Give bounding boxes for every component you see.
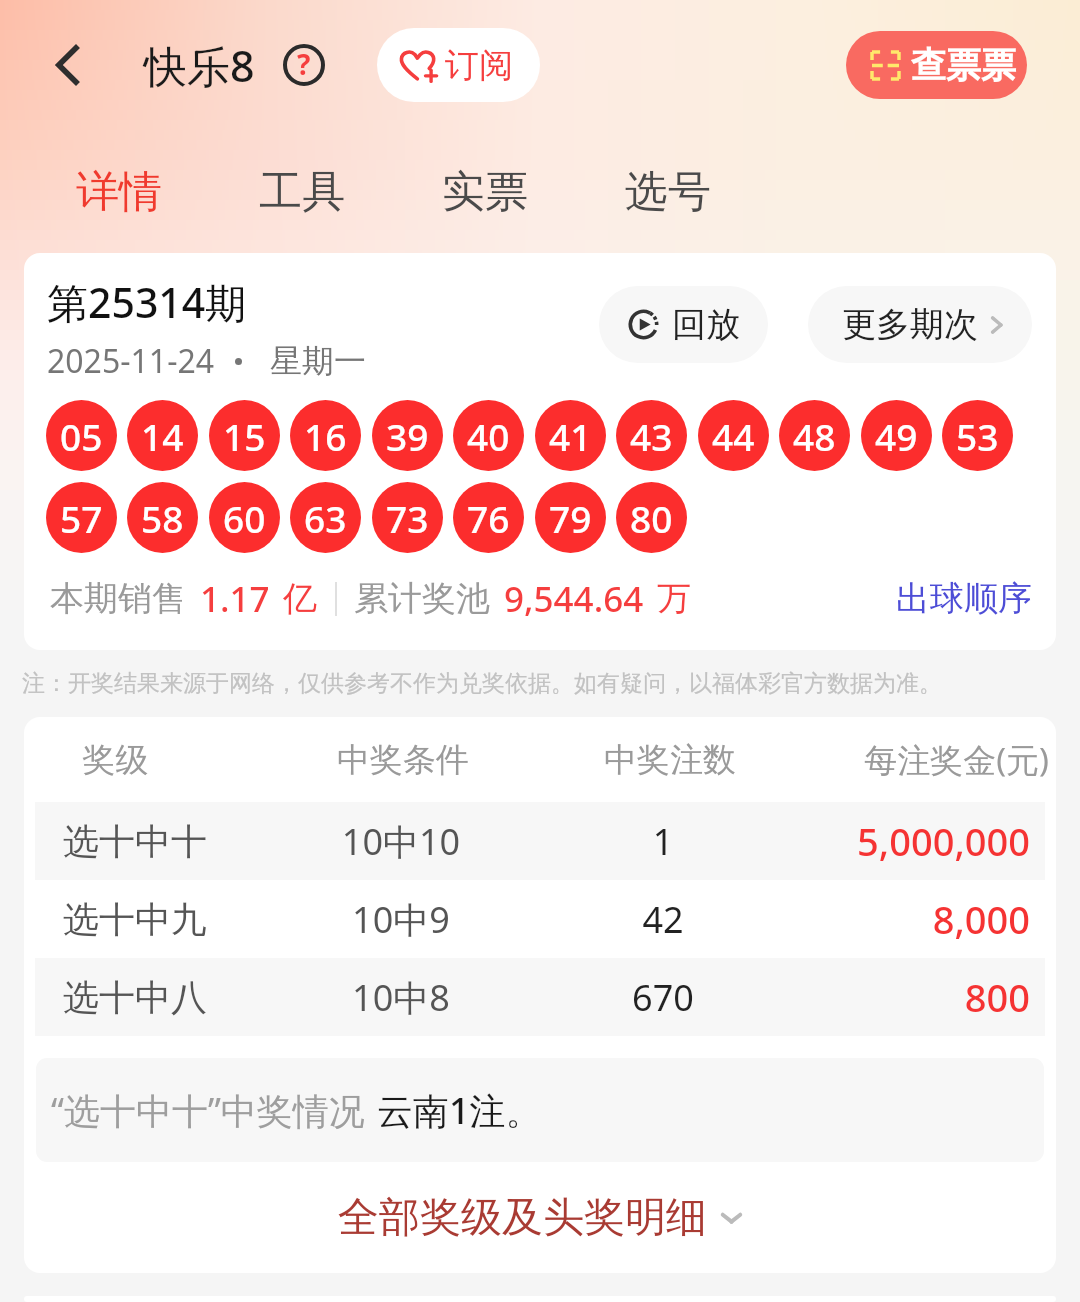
staticText: 05 [60, 411, 103, 461]
staticText: 5,000,000 [759, 815, 1030, 867]
staticText: 注：开奖结果来源于网络，仅供参考不作为兑奖依据。如有疑问，以福体彩官方数据为准。 [22, 669, 1080, 698]
staticText: 15 [223, 411, 266, 461]
button[interactable]: 选十中九 [35, 880, 1045, 958]
staticText: 80 [630, 493, 673, 543]
staticText: 63 [304, 493, 347, 543]
button[interactable]: Back [44, 35, 104, 95]
staticText: 800 [759, 971, 1030, 1023]
staticText: 42 [567, 895, 759, 944]
staticText: 快乐8 [144, 36, 255, 95]
button[interactable]: 全部奖级及头奖明细 [24, 1162, 1056, 1273]
button[interactable]: 更多期次 [808, 286, 1032, 363]
staticText: 48 [793, 411, 836, 461]
button[interactable]: 详情 [76, 130, 259, 253]
staticText: 1 [567, 817, 759, 866]
button[interactable]: Help [283, 44, 325, 86]
staticText: 出球顺序 [896, 577, 1032, 620]
staticText: 奖级 [24, 739, 207, 781]
staticText: 星期一 [270, 341, 366, 381]
button[interactable]: 选十中八 [35, 958, 1045, 1036]
staticText: 更多期次 [842, 303, 978, 346]
staticText: 58 [141, 493, 184, 543]
staticText: 10中8 [235, 973, 567, 1022]
staticText: 40 [467, 411, 510, 461]
staticText: 累计奖池 [354, 577, 490, 620]
staticText: 60 [223, 493, 266, 543]
staticText: 79 [549, 493, 592, 543]
staticText: 全部奖级及头奖明细 [338, 1192, 707, 1244]
staticText: 10中10 [235, 817, 567, 866]
staticText: 8,000 [759, 893, 1030, 945]
button[interactable]: 选十中十 [35, 802, 1045, 880]
staticText: 53 [956, 411, 999, 461]
staticText: 2025-11-24 [47, 339, 215, 383]
staticText: 76 [467, 493, 510, 543]
staticText: 本期销售 [50, 577, 186, 620]
staticText: 万 [657, 577, 691, 620]
staticText: 亿 [283, 577, 317, 620]
staticText: 670 [567, 973, 759, 1022]
staticText: 49 [875, 411, 918, 461]
staticText: 第25314期 [47, 274, 247, 330]
staticText: 选号 [625, 165, 711, 219]
button[interactable]: 回放 [599, 286, 768, 363]
staticText: 9,544.64 [504, 575, 644, 623]
staticText: 73 [386, 493, 429, 543]
staticText: 39 [386, 411, 429, 461]
staticText: 57 [60, 493, 103, 543]
staticText: 1.17 [200, 575, 270, 623]
staticText: “选十中十”中奖情况 [51, 1086, 365, 1135]
staticText: 工具 [259, 165, 345, 219]
staticText: 每注奖金(元) [741, 737, 1049, 782]
staticText: 14 [141, 411, 184, 461]
staticText: 选十中十 [35, 819, 235, 864]
button[interactable]: 实票 [442, 130, 625, 253]
button[interactable]: 订阅 [377, 28, 540, 102]
staticText: 实票 [442, 165, 528, 219]
staticText: 云南1注。 [377, 1086, 542, 1135]
staticText: 选十中八 [35, 975, 235, 1020]
staticText: 中奖条件 [207, 739, 599, 781]
staticText: 43 [630, 411, 673, 461]
staticText: ? [297, 45, 311, 83]
button[interactable]: 出球顺序 [896, 565, 1032, 632]
button[interactable]: 工具 [259, 130, 442, 253]
staticText: 41 [549, 411, 592, 461]
staticText: 详情 [76, 165, 162, 219]
staticText: 订阅 [445, 44, 513, 87]
staticText: 选十中九 [35, 897, 235, 942]
staticText: 查票票 [911, 43, 1016, 87]
button[interactable]: 选号 [625, 130, 735, 253]
button[interactable]: 查票票 [846, 31, 1027, 99]
button[interactable]: “选十中十”中奖情况 [36, 1058, 1044, 1162]
staticText: 16 [304, 411, 347, 461]
staticText: 回放 [672, 303, 740, 346]
staticText: 10中9 [235, 895, 567, 944]
staticText: 44 [712, 411, 755, 461]
staticText: 中奖注数 [599, 739, 741, 781]
